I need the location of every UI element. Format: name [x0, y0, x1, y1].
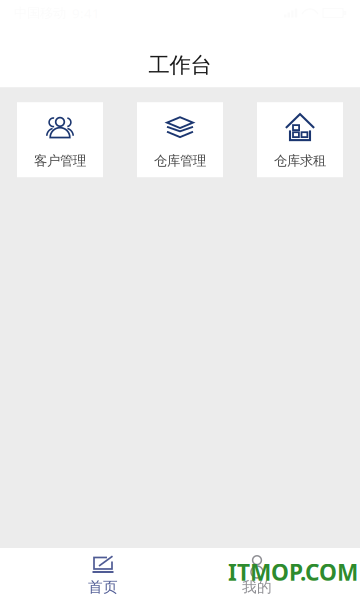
button[interactable]: 首页 — [40, 548, 166, 600]
staticText: 仓库求租 — [274, 152, 326, 169]
staticText: 我的 — [242, 578, 272, 596]
staticText: 客户管理 — [34, 152, 86, 169]
button[interactable]: 客户管理 — [17, 102, 103, 177]
staticText: 仓库管理 — [154, 152, 206, 169]
button[interactable]: 仓库求租 — [257, 102, 343, 177]
staticText: 首页 — [88, 578, 118, 596]
staticText: ITMOP.COM — [228, 557, 358, 587]
staticText: 工作台 — [148, 52, 211, 78]
button[interactable]: 我的 — [194, 548, 320, 600]
button[interactable]: 仓库管理 — [137, 102, 223, 177]
